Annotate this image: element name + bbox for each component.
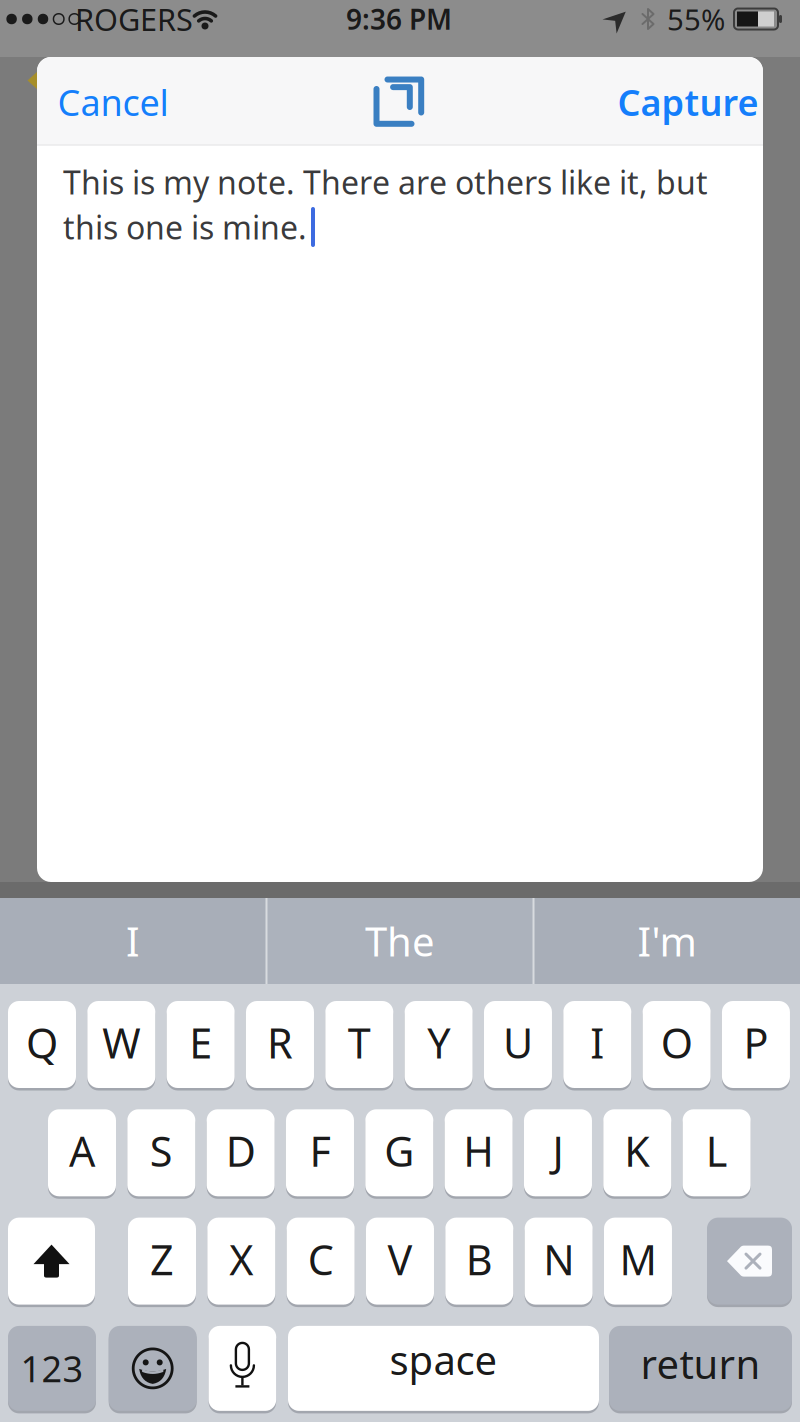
staticText: space [389,1333,497,1386]
staticText: S [150,1123,173,1178]
staticText: Capture [617,78,758,126]
staticText: A [69,1123,95,1178]
button[interactable]: W [87,999,155,1089]
staticText: 123 [20,1344,83,1392]
button[interactable]: Z [128,1216,196,1306]
button[interactable]: F [286,1108,354,1198]
staticText: Z [150,1232,174,1287]
button[interactable]: Q [8,999,76,1089]
staticText: B [466,1232,493,1287]
button[interactable]: Y [405,999,473,1089]
button[interactable]: I'm [535,898,799,984]
staticText: I'm [637,914,696,967]
button[interactable]: K [603,1108,671,1198]
staticText: Cancel [57,78,168,126]
staticText: return [640,1337,760,1390]
button[interactable]: M [604,1216,672,1306]
staticText: G [384,1123,414,1178]
button[interactable]: N [525,1216,593,1306]
staticText: C [308,1232,334,1287]
button[interactable]: Cancel [57,78,168,126]
button[interactable]: R [246,999,314,1089]
button[interactable]: S [127,1108,195,1198]
staticText: M [619,1232,656,1287]
button[interactable]: P [722,999,790,1089]
button[interactable]: space [288,1324,599,1412]
button[interactable]: B [445,1216,513,1306]
button[interactable]: Shift [8,1216,95,1306]
staticText: O [661,1015,693,1070]
staticText: K [624,1123,650,1178]
staticText: U [503,1015,533,1070]
button[interactable]: D [207,1108,275,1198]
staticText: H [463,1123,494,1178]
staticText: The [365,914,435,967]
button[interactable]: G [365,1108,433,1198]
staticText: L [706,1123,728,1178]
button[interactable]: E [167,999,235,1089]
button[interactable]: A [48,1108,116,1198]
button[interactable]: Dictation [209,1324,276,1412]
staticText: this one is mine. [63,206,307,248]
button[interactable]: The [268,898,532,984]
button[interactable]: U [484,999,552,1089]
button[interactable]: L [683,1108,751,1198]
button[interactable]: C [287,1216,355,1306]
button[interactable]: I [563,999,631,1089]
button[interactable]: X [207,1216,275,1306]
staticText: T [348,1015,371,1070]
staticText: P [743,1015,768,1070]
staticText: This is my note. There are others like i… [63,161,708,203]
button[interactable]: V [366,1216,434,1306]
button[interactable]: return [609,1324,792,1412]
staticText: 9:36 PM [346,0,452,38]
button[interactable]: 123 [8,1324,96,1412]
button[interactable]: O [643,999,711,1089]
staticText: D [226,1123,256,1178]
staticText: I [590,1015,604,1070]
button[interactable]: Capture [617,78,758,126]
staticText: Y [427,1015,450,1070]
staticText: E [189,1015,212,1070]
button[interactable]: I [1,898,265,984]
staticText: R [267,1015,293,1070]
button[interactable]: Emoji [109,1324,197,1412]
staticText: N [543,1232,574,1287]
staticText: 55% [667,0,725,38]
staticText: X [229,1232,253,1287]
staticText: ROGERS [75,0,193,39]
button[interactable]: T [325,999,393,1089]
button[interactable]: Delete [707,1216,792,1306]
staticText: J [552,1123,563,1178]
staticText: Q [26,1015,58,1070]
staticText: F [309,1123,330,1178]
button[interactable]: H [445,1108,513,1198]
staticText: W [102,1015,140,1070]
staticText: I [126,914,140,967]
staticText: V [387,1232,412,1287]
button[interactable]: J [524,1108,592,1198]
button[interactable]: Capture mode [376,76,424,127]
